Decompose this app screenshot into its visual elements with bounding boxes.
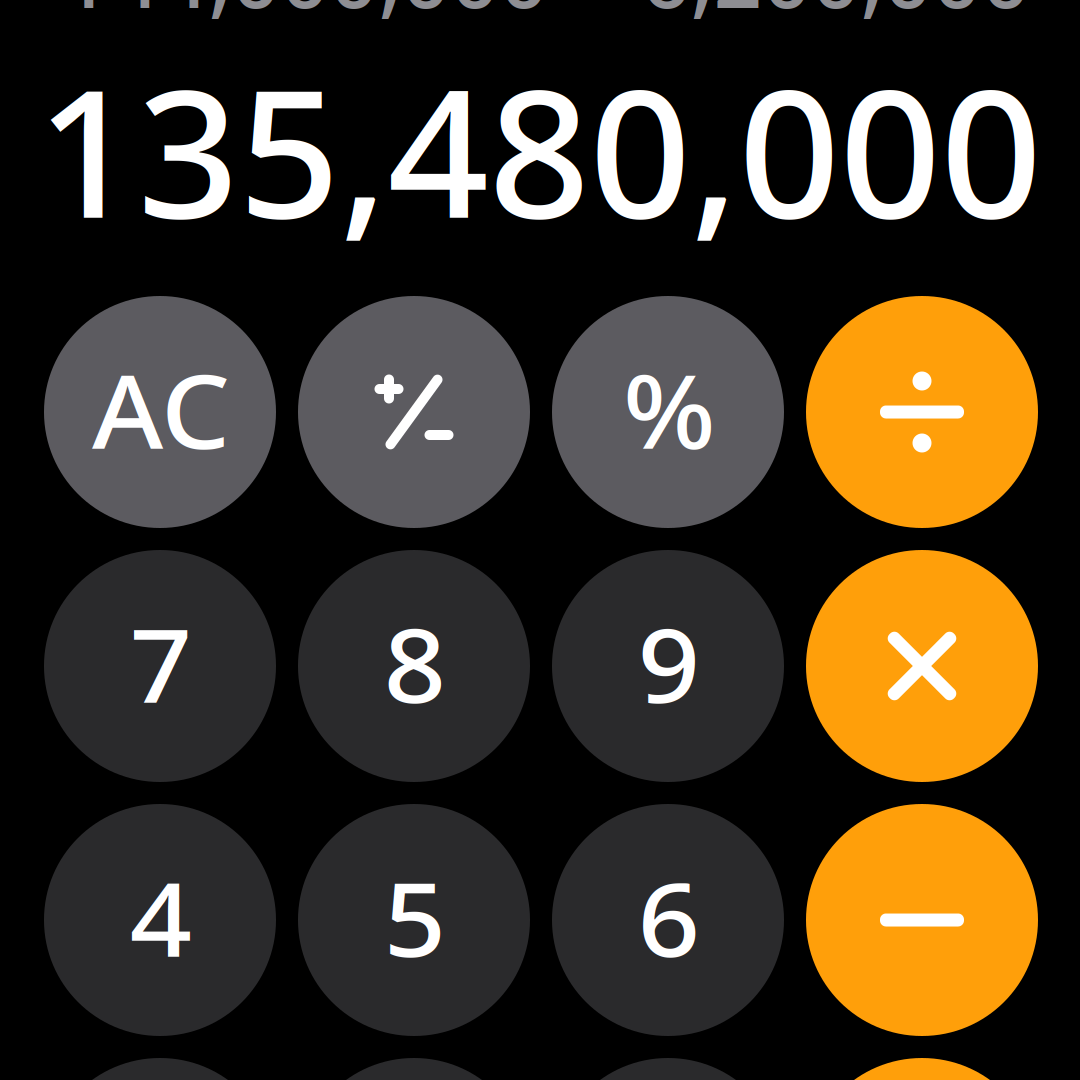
staticText: 135,480,000 bbox=[36, 31, 1041, 267]
staticText: % bbox=[625, 341, 712, 477]
button[interactable]: 4 bbox=[44, 804, 276, 1036]
button[interactable]: 6 bbox=[552, 804, 784, 1036]
button[interactable]: 1 bbox=[44, 1058, 276, 1080]
button[interactable]: 5 bbox=[298, 804, 530, 1036]
button[interactable]: All Clear bbox=[44, 296, 276, 528]
staticText: 9 bbox=[639, 595, 698, 731]
button[interactable]: Divide bbox=[806, 296, 1038, 528]
button[interactable]: Subtract bbox=[806, 804, 1038, 1036]
button[interactable]: 2 bbox=[298, 1058, 530, 1080]
button[interactable]: Toggle Sign bbox=[298, 296, 530, 528]
button[interactable]: 7 bbox=[44, 550, 276, 782]
button[interactable]: Multiply bbox=[806, 550, 1038, 782]
button[interactable]: 3 bbox=[552, 1058, 784, 1080]
staticText: AC bbox=[96, 341, 226, 477]
button[interactable]: Percent bbox=[552, 296, 784, 528]
staticText: 5 bbox=[385, 849, 444, 985]
staticText: 4 bbox=[131, 849, 190, 985]
staticText: 6 bbox=[639, 849, 698, 985]
staticText: 7 bbox=[131, 595, 190, 731]
button[interactable]: 8 bbox=[298, 550, 530, 782]
button[interactable]: 9 bbox=[552, 550, 784, 782]
button[interactable]: Add bbox=[806, 1058, 1038, 1080]
staticText: 144,000,000 ÷ 6,200,000 bbox=[61, 0, 1030, 32]
staticText: 8 bbox=[385, 595, 444, 731]
